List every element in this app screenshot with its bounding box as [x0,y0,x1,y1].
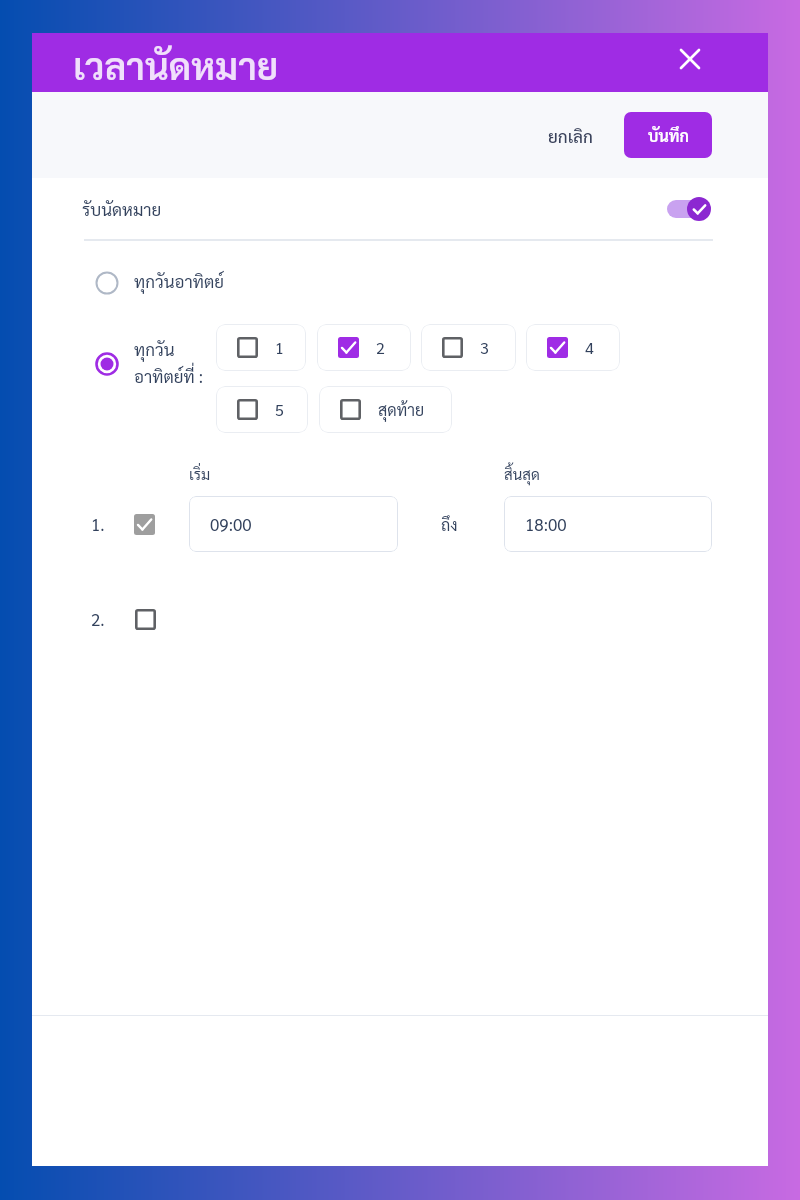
staticText: 4 [585,337,594,358]
staticText: 1 [275,337,284,358]
staticText: เวลานัดหมาย [73,40,279,88]
button[interactable]: Option [94,351,120,377]
button[interactable]: ยกเลิก [536,115,605,157]
staticText: 2 [376,337,385,358]
button[interactable]: Checkbox [237,337,258,358]
button[interactable]: บันทึก [624,112,712,158]
staticText: 1. [91,513,105,535]
button[interactable]: Checkbox [526,324,620,371]
button[interactable]: Checkbox [547,337,568,358]
staticText: รับนัดหมาย [82,198,162,220]
staticText: 3 [480,337,489,358]
staticText: ยกเลิก [548,125,593,147]
staticText: 5 [275,399,284,420]
button[interactable]: Checkbox [216,386,308,433]
button[interactable]: Checkbox [421,324,516,371]
staticText: บันทึก [648,125,689,146]
button[interactable]: Option [94,270,120,296]
button[interactable]: Checkbox [237,399,258,420]
staticText: 18:00 [525,513,567,535]
button[interactable]: Checkbox [317,324,411,371]
staticText: ทุกวันอาทิตย์ [134,270,224,292]
button[interactable]: Checkbox [216,324,306,371]
staticText: ถึง [441,514,458,535]
button[interactable]: 18:00 [504,496,712,552]
button[interactable]: Checkbox [442,337,463,358]
button[interactable]: Enable appointments [661,192,713,226]
staticText: ทุกวัน อาทิตย์ที่ : [134,338,204,387]
button[interactable]: 09:00 [189,496,398,552]
staticText: เริ่ม [189,464,211,483]
staticText: สิ้นสุด [504,464,540,483]
button[interactable]: Checkbox [135,609,156,630]
button[interactable]: Checkbox [319,386,452,433]
button[interactable]: Option [94,270,224,296]
button[interactable]: Close [672,41,707,76]
staticText: 2. [91,608,105,630]
button[interactable]: Checkbox [338,337,359,358]
button[interactable]: Checkbox [340,399,361,420]
staticText: 09:00 [210,513,252,535]
staticText: สุดท้าย [378,399,425,420]
button[interactable]: Checkbox [134,514,155,535]
